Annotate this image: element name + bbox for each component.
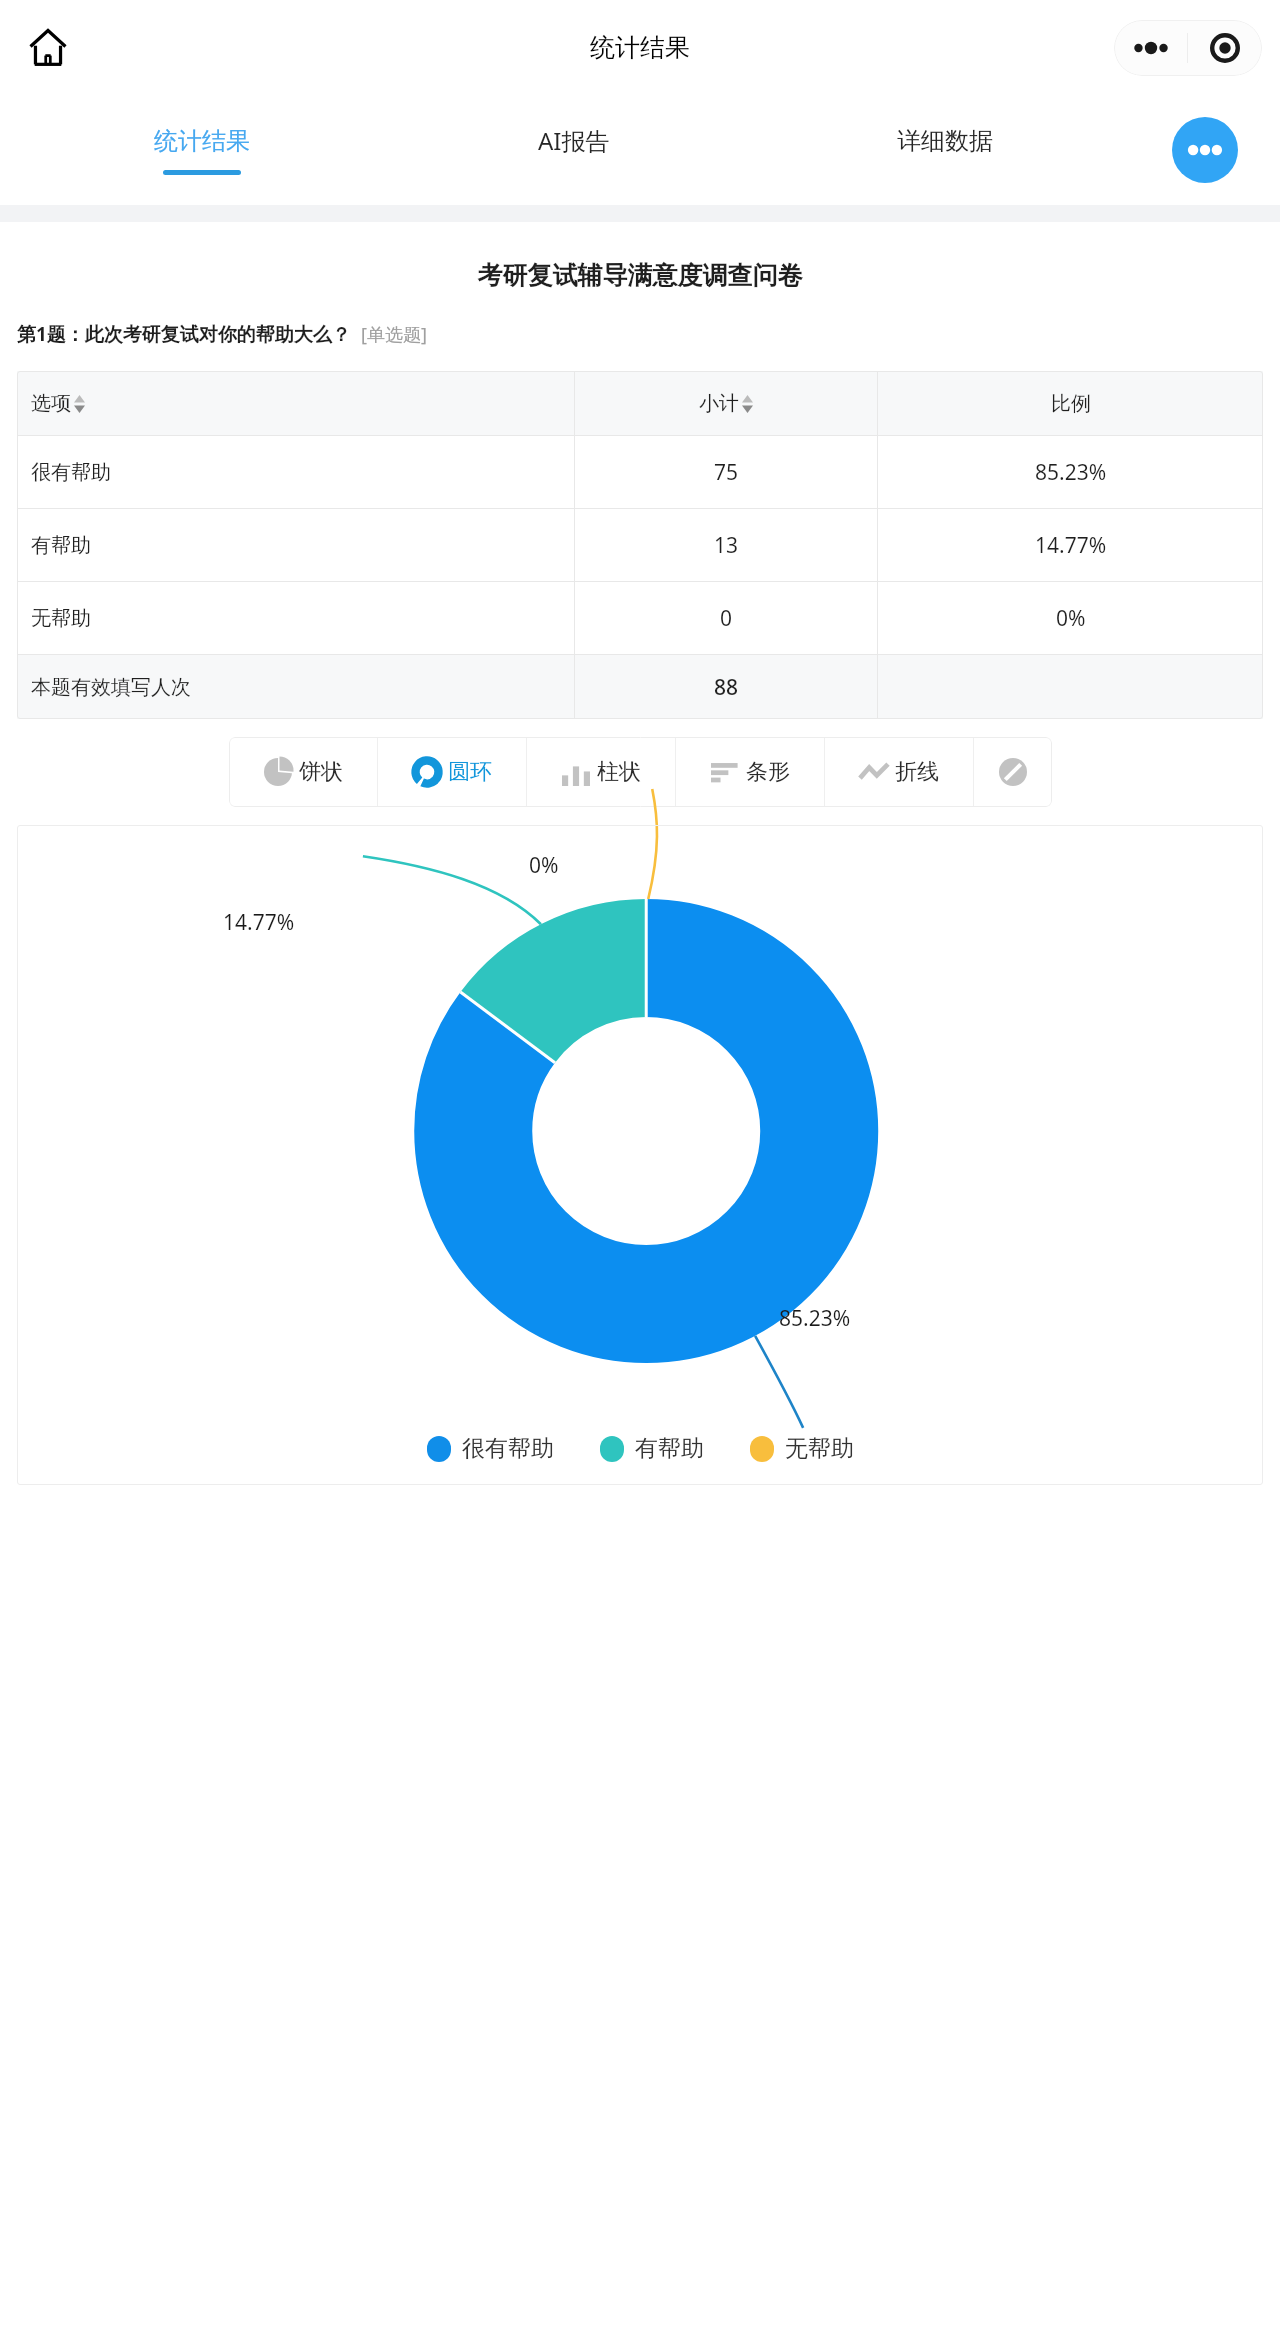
- button[interactable]: More: [1114, 20, 1187, 76]
- staticText: 有帮助: [31, 533, 91, 558]
- staticText: 75: [714, 458, 739, 487]
- staticText: 选项: [31, 391, 71, 416]
- staticText: 本题有效填写人次: [31, 675, 191, 700]
- button[interactable]: Home: [20, 20, 76, 76]
- staticText: 折线: [895, 758, 939, 786]
- staticText: 85.23%: [779, 1304, 851, 1333]
- staticText: 小计: [699, 391, 739, 416]
- button[interactable]: 圆环: [378, 737, 526, 807]
- staticText: 0%: [1056, 604, 1086, 633]
- staticText: 85.23%: [1035, 458, 1107, 487]
- staticText: AI报告: [538, 124, 610, 157]
- staticText: 圆环: [448, 758, 492, 786]
- button[interactable]: 统计结果: [16, 95, 388, 205]
- staticText: 很有帮助: [462, 1434, 554, 1463]
- staticText: 0: [720, 604, 733, 633]
- staticText: 有帮助: [635, 1434, 704, 1463]
- button[interactable]: 详细数据: [759, 95, 1130, 205]
- button[interactable]: 无帮助: [750, 1434, 854, 1463]
- staticText: 统计结果: [154, 126, 250, 156]
- staticText: 14.77%: [1035, 531, 1107, 560]
- staticText: 88: [714, 673, 739, 702]
- button[interactable]: 饼状: [229, 737, 377, 807]
- staticText: [单选题]: [361, 322, 427, 347]
- staticText: 考研复试辅导满意度调查问卷: [0, 260, 1280, 291]
- button[interactable]: More options: [1130, 95, 1280, 205]
- button[interactable]: AI报告: [388, 95, 759, 205]
- staticText: 条形: [746, 758, 790, 786]
- staticText: 比例: [1051, 391, 1091, 416]
- staticText: 柱状: [597, 758, 641, 786]
- staticText: 详细数据: [897, 126, 993, 156]
- button[interactable]: No chart: [974, 737, 1052, 807]
- button[interactable]: 条形: [676, 737, 824, 807]
- staticText: 0%: [529, 851, 559, 880]
- staticText: 很有帮助: [31, 460, 111, 485]
- button[interactable]: 有帮助: [600, 1434, 704, 1463]
- button[interactable]: 很有帮助: [427, 1434, 554, 1463]
- staticText: 无帮助: [31, 606, 91, 631]
- staticText: 14.77%: [223, 908, 295, 937]
- staticText: 统计结果: [590, 32, 690, 63]
- staticText: 无帮助: [785, 1434, 854, 1463]
- staticText: 第1题：此次考研复试对你的帮助大么？: [17, 321, 351, 347]
- staticText: 13: [714, 531, 739, 560]
- button[interactable]: 柱状: [527, 737, 675, 807]
- button[interactable]: Close: [1188, 20, 1262, 76]
- staticText: 饼状: [299, 758, 343, 786]
- button[interactable]: 折线: [825, 737, 973, 807]
